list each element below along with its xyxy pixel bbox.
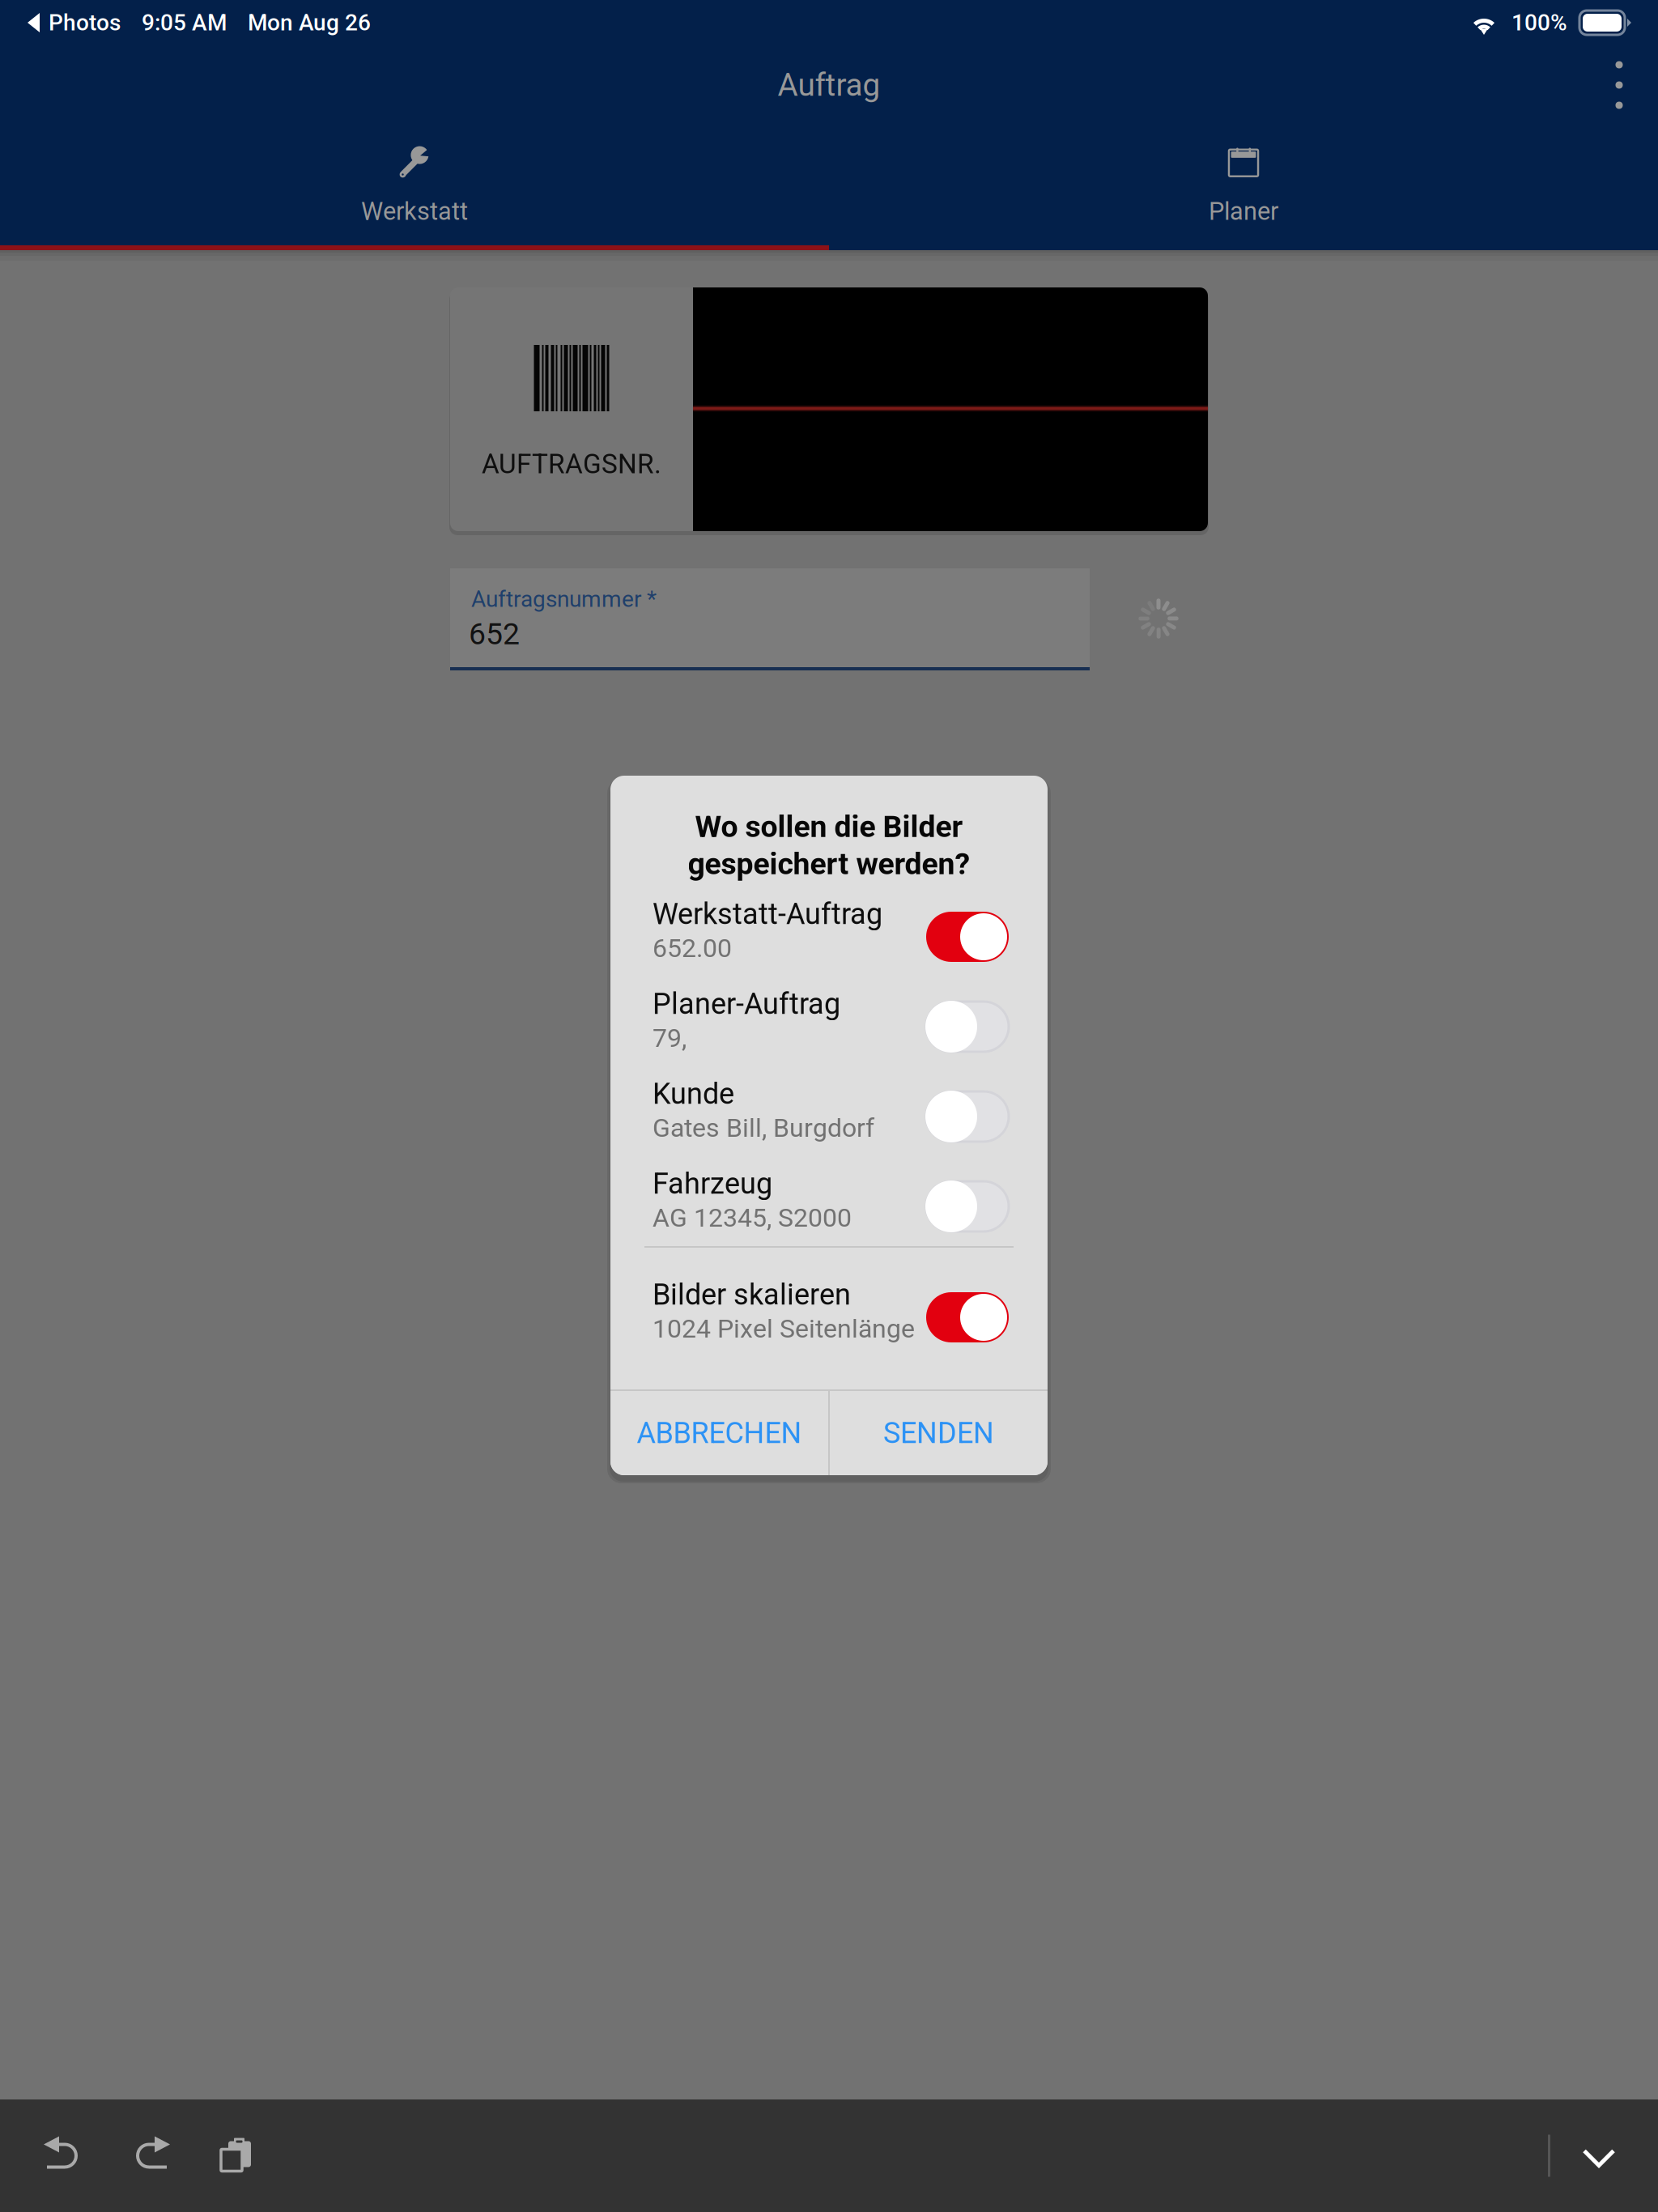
staticText: Auftrag — [778, 67, 880, 103]
button[interactable]: Redo — [128, 2133, 173, 2178]
staticText: Werkstatt — [361, 197, 468, 226]
button[interactable]: Werkstatt-Auftrag — [610, 891, 1048, 982]
staticText: Kunde — [653, 1077, 734, 1111]
staticText: AUFTRAGSNR. — [482, 448, 661, 480]
staticText: 9:05 AM — [142, 9, 227, 36]
button[interactable]: Hide toolbar — [1576, 2133, 1622, 2178]
staticText: Bilder skalieren — [653, 1278, 851, 1312]
button[interactable]: More options — [1580, 46, 1658, 124]
staticText: 1024 Pixel Seitenlänge — [653, 1313, 915, 1344]
button[interactable]: Undo — [40, 2133, 86, 2178]
staticText: 100% — [1511, 9, 1567, 36]
staticText: Wo sollen die Bilder — [695, 809, 963, 844]
staticText: Mon Aug 26 — [248, 9, 371, 36]
button[interactable]: ABBRECHEN — [610, 1391, 828, 1475]
staticText: 652.00 — [653, 933, 732, 963]
staticText: Planer-Auftrag — [653, 987, 840, 1021]
staticText: Gates Bill, Burgdorf — [653, 1113, 874, 1143]
button[interactable]: Werkstatt — [0, 117, 829, 245]
staticText: Planer — [1209, 197, 1278, 226]
button[interactable]: Fahrzeug — [610, 1161, 1048, 1252]
button[interactable]: Bilder skalieren — [610, 1272, 1048, 1363]
button[interactable]: SENDEN — [830, 1391, 1048, 1475]
button[interactable]: Planer — [829, 117, 1658, 245]
staticText: AG 12345, S2000 — [653, 1203, 852, 1233]
staticText: Werkstatt-Auftrag — [653, 897, 882, 931]
staticText: gespeichert werden? — [688, 846, 970, 882]
staticText: SENDEN — [883, 1416, 994, 1450]
button[interactable]: Paste — [215, 2133, 261, 2178]
staticText: Photos — [49, 9, 121, 36]
button[interactable]: Kunde — [610, 1071, 1048, 1162]
staticText: ABBRECHEN — [637, 1416, 802, 1450]
staticText: 652 — [469, 616, 520, 652]
staticText: 79, — [653, 1023, 687, 1053]
button[interactable]: Planer-Auftrag — [610, 981, 1048, 1072]
staticText: Fahrzeug — [653, 1167, 772, 1201]
staticText: Auftragsnummer * — [471, 586, 657, 612]
